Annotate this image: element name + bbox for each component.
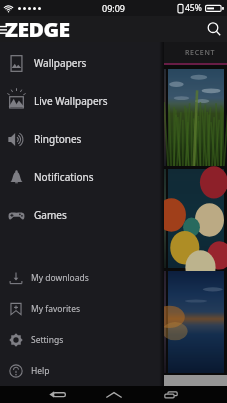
staticText: RECENT (185, 48, 216, 58)
staticText: 09:09 (102, 2, 126, 14)
button[interactable] (52, 69, 108, 166)
staticText: Wallpapers (34, 56, 87, 70)
button[interactable]: Search (201, 16, 227, 42)
button[interactable]: My favorites (0, 293, 164, 324)
button[interactable] (168, 169, 224, 268)
button[interactable] (52, 271, 108, 373)
staticText: Settings (31, 334, 64, 346)
button[interactable]: Live Wallpapers (0, 82, 164, 120)
staticText: Live Wallpapers (34, 94, 108, 108)
staticText: Ringtones (34, 132, 82, 146)
button[interactable]: Settings (0, 324, 164, 355)
button[interactable]: Notifications (0, 158, 164, 196)
button[interactable]: Ringtones (0, 120, 164, 158)
staticText: Help (31, 365, 50, 377)
button[interactable]: Games (0, 196, 164, 234)
button[interactable]: Open navigation drawer (0, 18, 12, 40)
button[interactable]: Back (41, 386, 73, 403)
button[interactable]: Recent apps (155, 386, 187, 403)
staticText: ZEDGE (5, 17, 71, 42)
button[interactable]: RECENT (169, 42, 227, 65)
button[interactable] (168, 69, 224, 166)
button[interactable]: Wallpapers (0, 44, 164, 82)
button[interactable]: Home (98, 386, 130, 403)
button[interactable]: Help (0, 355, 164, 386)
staticText: My downloads (31, 272, 89, 284)
staticText: Games (34, 208, 67, 222)
button[interactable] (52, 169, 108, 268)
button[interactable] (110, 169, 166, 268)
staticText: My favorites (31, 303, 81, 315)
button[interactable] (110, 271, 166, 373)
button[interactable] (110, 69, 166, 166)
staticText: Notifications (34, 170, 94, 184)
button[interactable] (168, 271, 224, 373)
staticText: 45% (185, 2, 202, 14)
button[interactable]: My downloads (0, 262, 164, 293)
